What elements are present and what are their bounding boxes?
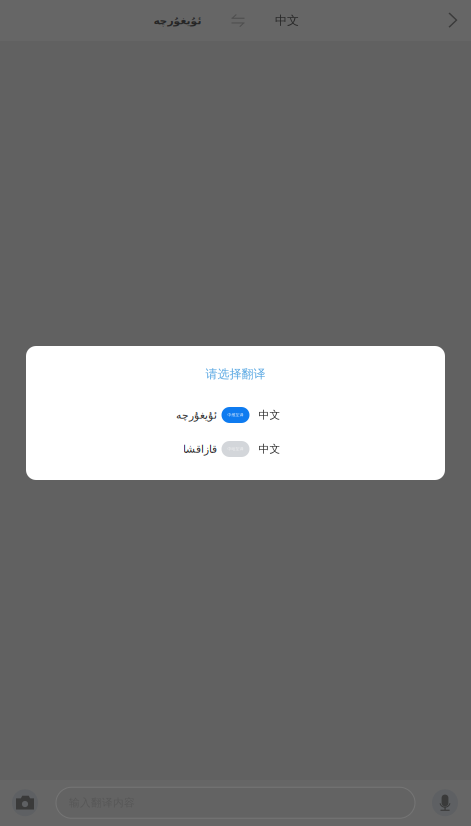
staticText: 请选择翻译	[205, 367, 265, 381]
staticText: 中文	[258, 408, 280, 421]
staticText: 中哈互译	[227, 446, 243, 451]
staticText: 中文	[275, 13, 299, 28]
staticText: قازاقشا	[182, 443, 216, 455]
button[interactable]: Voice input	[432, 789, 471, 816]
staticText: ئۇيغۇرچە	[175, 409, 216, 421]
button[interactable]: ئۇيغۇرچە	[0, 1, 201, 39]
button[interactable]: 中文	[275, 1, 365, 39]
button[interactable]: ئۇيغۇرچە	[26, 400, 444, 430]
button[interactable]: 输入翻译内容	[56, 787, 415, 818]
staticText: 中维互译	[227, 412, 243, 417]
staticText: 中文	[258, 442, 280, 455]
button[interactable]: قازاقشا	[26, 434, 444, 464]
staticText: ئۇيغۇرچە	[153, 14, 201, 26]
button[interactable]: Next	[435, 1, 471, 39]
button[interactable]: Camera	[0, 789, 56, 816]
staticText: 输入翻译内容	[69, 796, 135, 809]
